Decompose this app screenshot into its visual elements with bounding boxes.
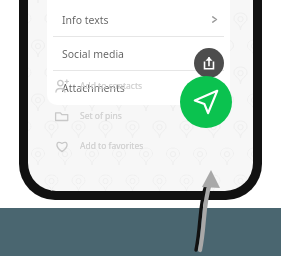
button[interactable]: Set of pins	[54, 105, 204, 127]
staticText: Add to contacts	[80, 80, 143, 92]
button[interactable]: Add to favorites	[54, 135, 204, 157]
button[interactable]: Social media	[47, 37, 230, 70]
staticText: Set of pins	[80, 110, 122, 122]
button[interactable]: Info texts	[47, 3, 230, 36]
staticText: Add to favorites	[80, 140, 144, 152]
button[interactable]: Navigate	[180, 76, 232, 128]
button[interactable]: Attachments	[47, 71, 230, 104]
staticText: Attachments	[62, 81, 125, 95]
button[interactable]: Add to contacts	[54, 75, 204, 97]
button[interactable]: Share	[194, 48, 224, 78]
staticText: Info texts	[62, 13, 109, 27]
staticText: Social media	[62, 47, 124, 61]
